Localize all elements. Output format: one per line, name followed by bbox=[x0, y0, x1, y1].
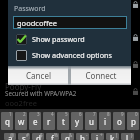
staticText: Password bbox=[14, 4, 46, 14]
staticText: f bbox=[51, 133, 54, 140]
other: Secured network bbox=[132, 34, 139, 42]
button[interactable]: Show advanced options bbox=[8, 49, 131, 61]
button[interactable]: Connect bbox=[71, 66, 131, 85]
button[interactable]: Show password bbox=[8, 33, 131, 45]
staticText: 8 bbox=[107, 111, 110, 117]
staticText: & bbox=[69, 132, 73, 138]
button[interactable]: goodcoffee bbox=[13, 16, 127, 29]
staticText: ) bbox=[131, 132, 133, 138]
staticText: ooo2free bbox=[5, 98, 37, 108]
staticText: - bbox=[86, 132, 88, 138]
button[interactable]: Cancel bbox=[8, 66, 68, 85]
staticText: Poopy-Fly bbox=[5, 81, 42, 92]
staticText: p bbox=[131, 116, 136, 127]
button[interactable]: r bbox=[43, 112, 55, 130]
staticText: Show advanced options bbox=[32, 50, 112, 60]
staticText: 4 bbox=[51, 111, 54, 117]
staticText: i bbox=[104, 116, 107, 127]
staticText: s bbox=[22, 133, 26, 140]
staticText: k bbox=[110, 133, 115, 140]
staticText: Show password bbox=[32, 34, 85, 44]
staticText: ( bbox=[116, 132, 118, 138]
staticText: Connect bbox=[85, 70, 117, 81]
button[interactable]: i bbox=[99, 112, 111, 130]
staticText: Secured with WPA/WPA2 bbox=[5, 89, 77, 97]
staticText: $ bbox=[40, 132, 43, 138]
button[interactable]: j bbox=[91, 133, 104, 140]
button[interactable]: s bbox=[18, 133, 30, 140]
staticText: 7 bbox=[93, 111, 96, 117]
staticText: r bbox=[47, 116, 51, 127]
button[interactable]: l bbox=[121, 133, 134, 140]
button[interactable]: d bbox=[32, 133, 44, 140]
button[interactable]: k bbox=[106, 133, 119, 140]
staticText: 5 bbox=[65, 111, 68, 117]
staticText: Cancel bbox=[26, 70, 51, 81]
button[interactable]: y bbox=[71, 112, 83, 130]
staticText: # bbox=[26, 132, 29, 138]
staticText: 6 bbox=[79, 111, 82, 117]
staticText: y bbox=[75, 116, 80, 127]
staticText: j bbox=[96, 133, 99, 140]
staticText: @ bbox=[10, 132, 15, 138]
button[interactable]: p bbox=[127, 112, 139, 130]
button[interactable]: g bbox=[61, 133, 74, 140]
button[interactable]: f bbox=[46, 133, 59, 140]
button[interactable]: q bbox=[1, 112, 13, 130]
other: Secured network bbox=[132, 88, 139, 96]
button[interactable]: o bbox=[113, 112, 125, 130]
other: Secured network bbox=[132, 1, 139, 9]
staticText: 3 bbox=[37, 111, 40, 117]
button[interactable]: h bbox=[76, 133, 89, 140]
staticText: + bbox=[100, 132, 103, 138]
staticText: u bbox=[89, 116, 94, 127]
staticText: l bbox=[126, 133, 129, 140]
staticText: 9 bbox=[121, 111, 124, 117]
staticText: g bbox=[65, 133, 70, 140]
staticText: 2 bbox=[23, 111, 26, 117]
staticText: 0 bbox=[135, 111, 138, 117]
staticText: d bbox=[36, 133, 41, 140]
staticText: a bbox=[8, 133, 13, 140]
staticText: w bbox=[18, 116, 25, 127]
button[interactable]: a bbox=[4, 133, 16, 140]
staticText: 1 bbox=[9, 111, 12, 117]
staticText: q bbox=[5, 116, 10, 127]
staticText: e bbox=[33, 116, 38, 127]
button[interactable]: e bbox=[29, 112, 41, 130]
staticText: % bbox=[54, 132, 58, 138]
staticText: goodcoffee bbox=[17, 18, 58, 28]
staticText: o bbox=[117, 116, 122, 127]
button[interactable]: u bbox=[85, 112, 97, 130]
staticText: h bbox=[80, 133, 85, 140]
staticText: t bbox=[62, 116, 65, 127]
button[interactable]: w bbox=[15, 112, 27, 130]
button[interactable]: t bbox=[57, 112, 69, 130]
other: Secured network bbox=[132, 61, 139, 69]
